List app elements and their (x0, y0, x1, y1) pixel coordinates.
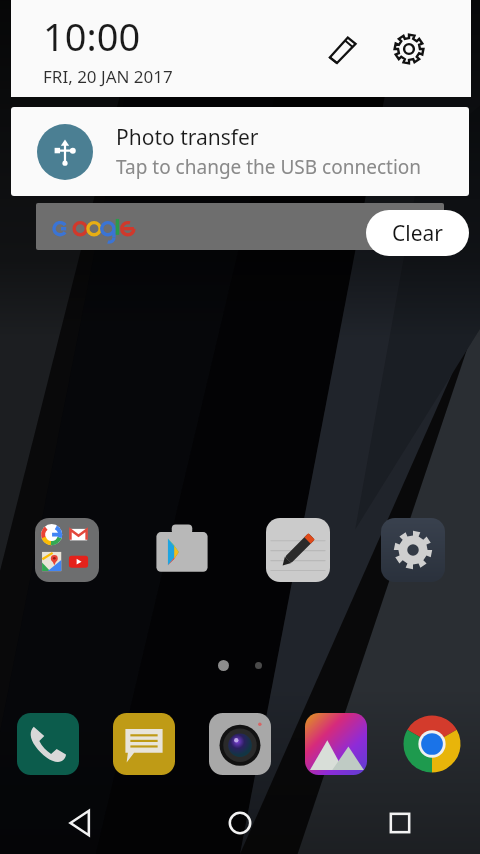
button[interactable]: Messages (110, 710, 178, 778)
button[interactable]: Photo transfer (11, 107, 469, 196)
staticText: 10:00 (43, 10, 141, 62)
button[interactable]: Phone (14, 710, 82, 778)
button[interactable]: Google search (36, 203, 444, 250)
staticText: Clear (392, 219, 443, 248)
button[interactable]: Clear (366, 210, 469, 256)
button[interactable]: Chrome (398, 710, 466, 778)
button[interactable]: Google (19, 518, 115, 582)
button[interactable]: Recents (320, 792, 480, 854)
staticText: Tap to change the USB connection (116, 154, 422, 180)
button[interactable]: Camera (206, 710, 274, 778)
button[interactable]: QuickMemo+ (250, 518, 346, 582)
staticText: Photo transfer (116, 123, 259, 152)
staticText: FRI, 20 JAN 2017 (43, 65, 173, 88)
button[interactable]: Settings (365, 518, 461, 582)
button[interactable]: Home (160, 792, 320, 854)
button[interactable]: Play Store (134, 518, 230, 582)
button[interactable]: Gallery (302, 710, 370, 778)
button[interactable]: Edit quick settings (321, 27, 365, 71)
button[interactable]: Back (0, 792, 160, 854)
button[interactable]: Settings (387, 27, 431, 71)
